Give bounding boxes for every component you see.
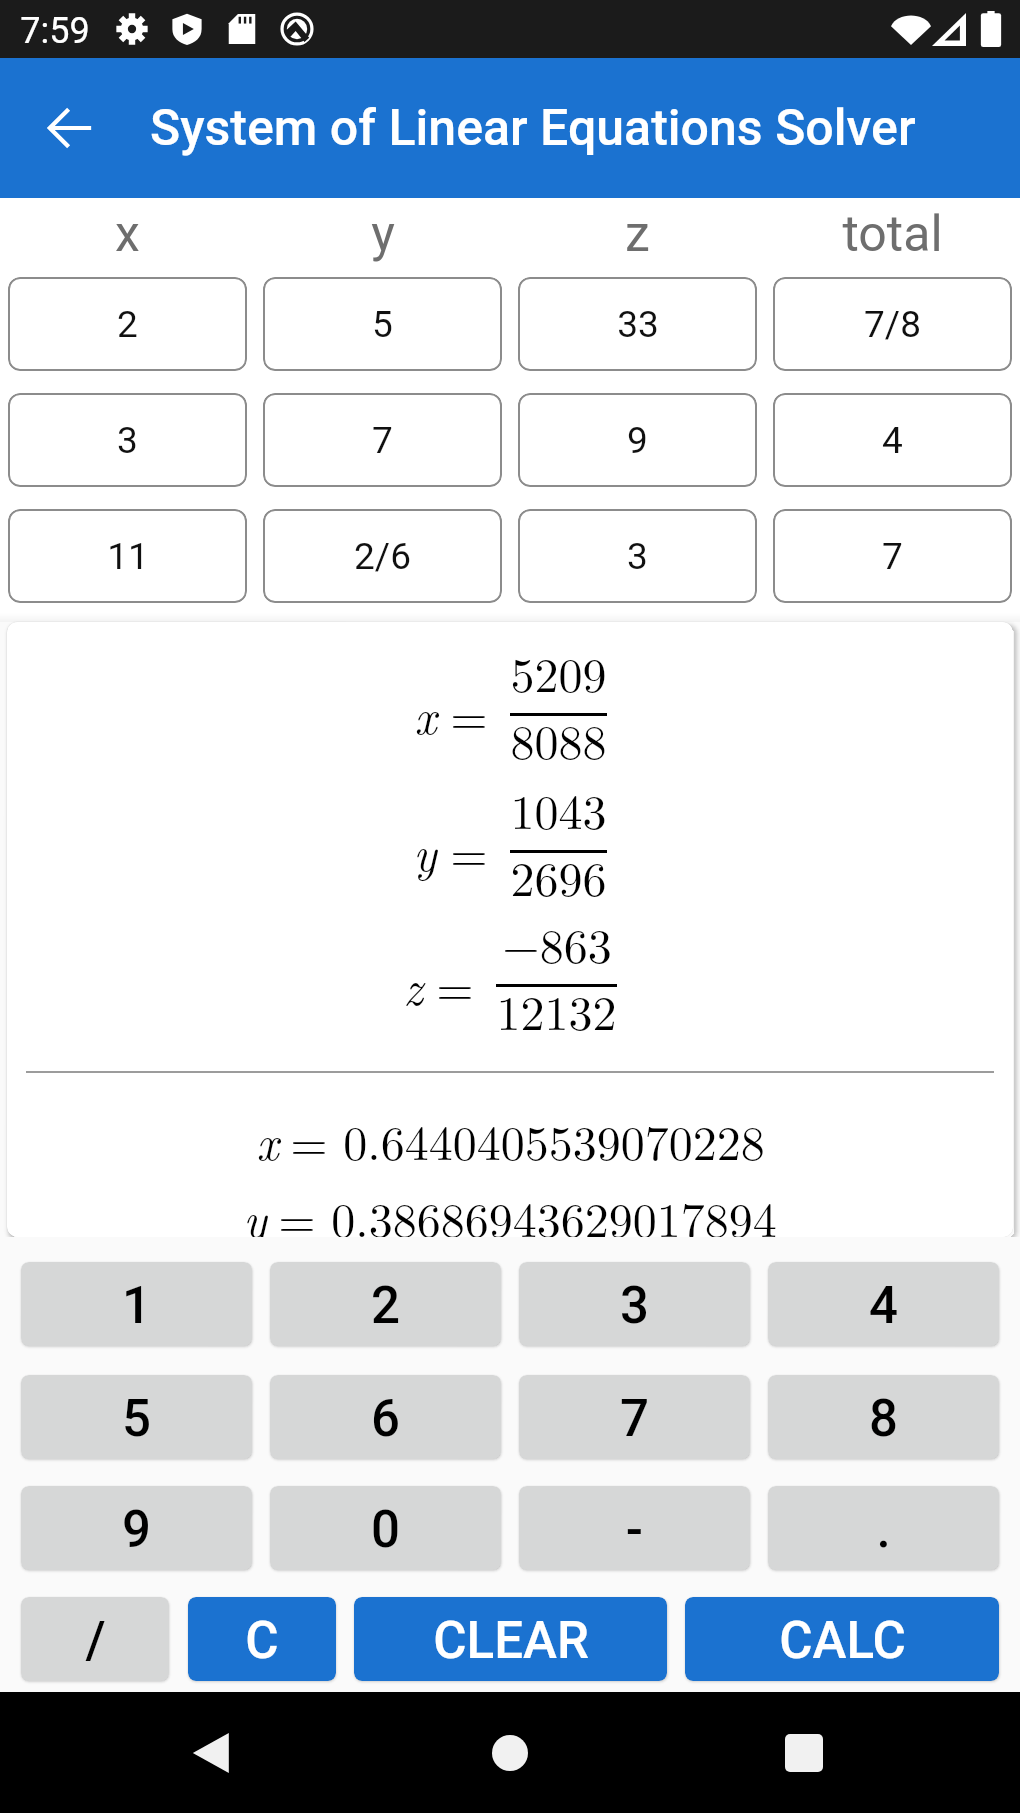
- button[interactable]: 3: [519, 1262, 750, 1346]
- staticText: =: [278, 1183, 316, 1237]
- button[interactable]: 3: [518, 509, 757, 603]
- staticText: 0: [371, 1500, 400, 1560]
- staticText: 4: [869, 1276, 898, 1336]
- staticText: 6: [371, 1389, 400, 1449]
- staticText: System of Linear Equations Solver: [150, 99, 916, 158]
- button[interactable]: 0: [270, 1486, 501, 1570]
- staticText: 9: [627, 419, 648, 462]
- staticText: CLEAR: [433, 1611, 589, 1671]
- button[interactable]: 7: [263, 393, 502, 487]
- button[interactable]: 2: [270, 1262, 501, 1346]
- staticText: 11: [107, 535, 149, 578]
- button[interactable]: 5: [21, 1375, 252, 1459]
- staticText: z: [403, 951, 423, 1019]
- staticText: 33: [617, 303, 659, 346]
- staticText: 5209: [510, 638, 607, 706]
- staticText: =: [436, 951, 474, 1019]
- staticText: 7/8: [864, 303, 921, 346]
- button[interactable]: 9: [21, 1486, 252, 1570]
- staticText: 0.38686943629017894: [331, 1183, 777, 1237]
- button[interactable]: 11: [8, 509, 247, 603]
- staticText: 0.6440405539070228: [343, 1106, 765, 1174]
- staticText: 1043: [510, 775, 607, 843]
- button[interactable]: 5: [263, 277, 502, 371]
- staticText: x: [414, 680, 437, 748]
- button[interactable]: CALC: [685, 1597, 999, 1681]
- button[interactable]: Recent apps: [751, 1700, 857, 1806]
- staticText: /: [85, 1611, 106, 1671]
- staticText: −863: [502, 909, 612, 977]
- staticText: 8: [869, 1389, 898, 1449]
- staticText: y: [413, 817, 437, 885]
- staticText: =: [450, 817, 488, 885]
- staticText: 7: [372, 419, 393, 462]
- staticText: 12132: [496, 976, 617, 1044]
- staticText: 4: [882, 419, 903, 462]
- button[interactable]: 7: [773, 509, 1012, 603]
- staticText: 2696: [510, 842, 607, 910]
- staticText: 7: [882, 535, 903, 578]
- staticText: 9: [122, 1500, 151, 1560]
- button[interactable]: 7: [519, 1375, 750, 1459]
- button[interactable]: .: [768, 1486, 999, 1570]
- staticText: total: [842, 205, 943, 264]
- button[interactable]: 2/6: [263, 509, 502, 603]
- button[interactable]: 8: [768, 1375, 999, 1459]
- button[interactable]: Back: [32, 90, 108, 166]
- staticText: 5: [372, 303, 393, 346]
- staticText: 1: [122, 1276, 151, 1336]
- staticText: .: [876, 1500, 891, 1560]
- button[interactable]: 6: [270, 1375, 501, 1459]
- button[interactable]: Back: [159, 1700, 265, 1806]
- staticText: 2/6: [354, 535, 411, 578]
- button[interactable]: 3: [8, 393, 247, 487]
- button[interactable]: C: [188, 1597, 336, 1681]
- button[interactable]: 33: [518, 277, 757, 371]
- staticText: 3: [620, 1276, 649, 1336]
- staticText: C: [245, 1611, 279, 1671]
- staticText: y: [243, 1183, 267, 1237]
- button[interactable]: 4: [768, 1262, 999, 1346]
- button[interactable]: 9: [518, 393, 757, 487]
- staticText: 3: [627, 535, 648, 578]
- staticText: 7:59: [20, 10, 90, 52]
- staticText: =: [290, 1106, 328, 1174]
- staticText: y: [371, 205, 395, 264]
- staticText: =: [450, 680, 488, 748]
- staticText: CALC: [779, 1611, 906, 1671]
- button[interactable]: 2: [8, 277, 247, 371]
- staticText: z: [625, 205, 650, 264]
- button[interactable]: 4: [773, 393, 1012, 487]
- button[interactable]: 1: [21, 1262, 252, 1346]
- staticText: x: [115, 205, 140, 264]
- staticText: 8088: [510, 705, 607, 773]
- button[interactable]: Home: [457, 1700, 563, 1806]
- staticText: x: [256, 1106, 279, 1174]
- staticText: 7: [620, 1389, 649, 1449]
- button[interactable]: /: [21, 1597, 169, 1681]
- staticText: 5: [122, 1389, 151, 1449]
- button[interactable]: 7/8: [773, 277, 1012, 371]
- staticText: 3: [117, 419, 138, 462]
- staticText: 2: [371, 1276, 400, 1336]
- button[interactable]: -: [519, 1486, 750, 1570]
- button[interactable]: CLEAR: [354, 1597, 667, 1681]
- staticText: -: [626, 1500, 643, 1560]
- staticText: 2: [117, 303, 138, 346]
